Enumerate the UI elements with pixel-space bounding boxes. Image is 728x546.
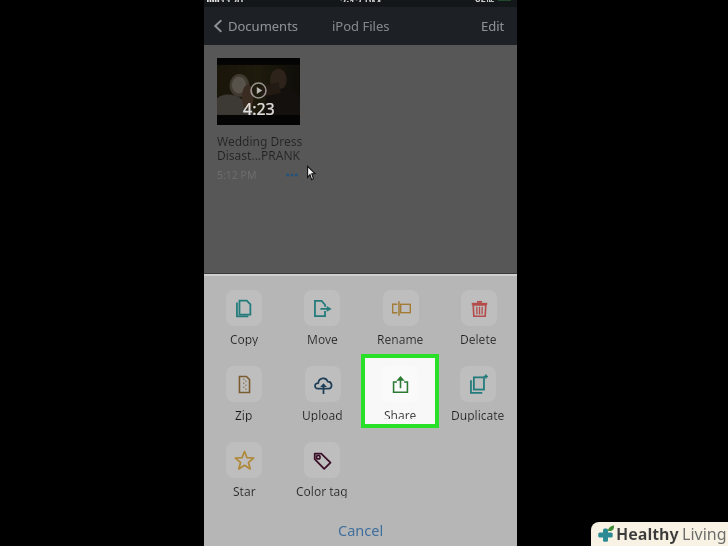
- staticText: Zip: [235, 407, 253, 422]
- staticText: Upload: [302, 407, 343, 422]
- button[interactable]: Color tag: [296, 442, 348, 498]
- staticText: Living: [682, 523, 727, 545]
- staticText: 3:13 PM: [340, 0, 382, 2]
- button[interactable]: More options: [284, 171, 300, 179]
- staticText: 1120: [220, 0, 243, 2]
- staticText: 4:23: [243, 98, 275, 120]
- button[interactable]: Back to Documents: [204, 17, 305, 35]
- button[interactable]: Delete: [460, 290, 497, 346]
- staticText: Star: [233, 483, 256, 498]
- staticText: 5:12 PM: [217, 168, 257, 182]
- staticText: Wedding Dress Disast...PRANK: [217, 133, 303, 164]
- staticText: Rename: [377, 331, 424, 346]
- staticText: Share: [384, 407, 417, 419]
- button[interactable]: Cancel: [204, 513, 517, 546]
- button[interactable]: Upload: [302, 366, 343, 422]
- button[interactable]: Duplicate: [451, 366, 505, 422]
- staticText: iPod Files: [332, 17, 390, 35]
- staticText: Copy: [230, 331, 259, 346]
- staticText: Color tag: [296, 483, 348, 498]
- button[interactable]: Zip: [226, 366, 262, 422]
- staticText: Cancel: [338, 520, 384, 540]
- staticText: Delete: [460, 331, 497, 346]
- button[interactable]: Edit: [469, 8, 517, 44]
- staticText: Edit: [481, 17, 505, 35]
- button[interactable]: Star: [226, 442, 262, 498]
- staticText: Move: [307, 331, 338, 346]
- staticText: Healthy: [616, 523, 679, 545]
- staticText: Documents: [228, 17, 299, 35]
- button[interactable]: Share: [365, 366, 435, 419]
- staticText: Duplicate: [451, 407, 505, 422]
- button[interactable]: 4:23: [217, 58, 303, 182]
- button[interactable]: Copy: [226, 290, 262, 346]
- button[interactable]: Rename: [377, 290, 424, 346]
- button[interactable]: Move: [304, 290, 340, 346]
- staticText: 85%: [475, 0, 495, 2]
